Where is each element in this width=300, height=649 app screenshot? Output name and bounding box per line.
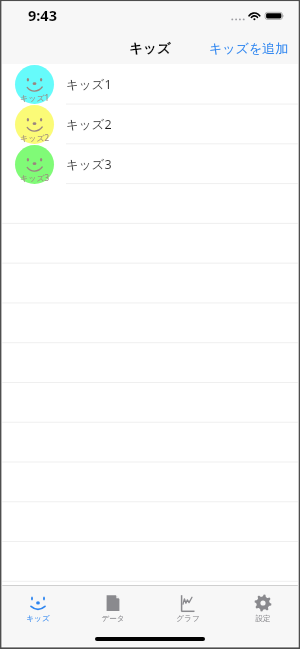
- staticText: 設定: [255, 614, 271, 624]
- button[interactable]: キッズを追加: [197, 33, 300, 61]
- staticText: キッズ1: [20, 92, 50, 103]
- staticText: キッズ: [26, 614, 50, 624]
- staticText: キッズ2: [20, 132, 50, 143]
- staticText: データ: [101, 614, 125, 624]
- staticText: キッズ3: [20, 172, 50, 183]
- staticText: 9:43: [28, 5, 57, 25]
- staticText: キッズ3: [66, 156, 112, 173]
- button[interactable]: キッズ2: [0, 104, 300, 144]
- button[interactable]: 設定: [225, 586, 300, 624]
- staticText: キッズ: [129, 40, 171, 57]
- button[interactable]: キッズ1: [0, 64, 300, 104]
- button[interactable]: キッズ: [0, 586, 75, 624]
- button[interactable]: グラフ: [150, 586, 225, 624]
- staticText: キッズを追加: [209, 40, 289, 56]
- staticText: グラフ: [176, 614, 200, 624]
- staticText: キッズ1: [66, 76, 112, 93]
- button[interactable]: キッズ3: [0, 144, 300, 184]
- button[interactable]: データ: [75, 586, 150, 624]
- staticText: キッズ2: [66, 116, 112, 133]
